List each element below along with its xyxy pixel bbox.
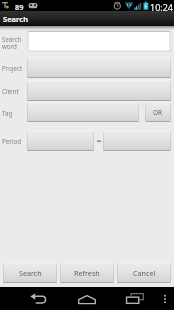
button[interactable] [103, 130, 171, 151]
staticText: Search word [2, 35, 28, 50]
staticText: Search [3, 14, 29, 24]
button[interactable] [27, 57, 171, 78]
button[interactable]: More options [157, 288, 173, 309]
button[interactable]: Back [24, 288, 52, 309]
button[interactable]: Home [73, 288, 101, 309]
button[interactable] [28, 31, 170, 51]
staticText: Cancel [133, 268, 156, 278]
staticText: 89 [15, 2, 24, 12]
staticText: Search [19, 268, 42, 278]
button[interactable]: Recent apps [121, 288, 149, 309]
button[interactable]: Cancel [117, 262, 171, 283]
staticText: Client [2, 87, 28, 95]
staticText: 10:24 [150, 1, 174, 12]
staticText: Refresh [74, 268, 100, 278]
staticText: OR [153, 108, 163, 117]
button[interactable]: Refresh [60, 262, 114, 283]
button[interactable]: OR [145, 102, 171, 122]
button[interactable]: Search [3, 262, 57, 283]
staticText: Tag [2, 109, 28, 117]
staticText: Period [2, 137, 28, 145]
button[interactable] [27, 80, 171, 101]
button[interactable] [27, 130, 94, 151]
button[interactable] [27, 102, 139, 122]
staticText: Project [2, 64, 28, 72]
